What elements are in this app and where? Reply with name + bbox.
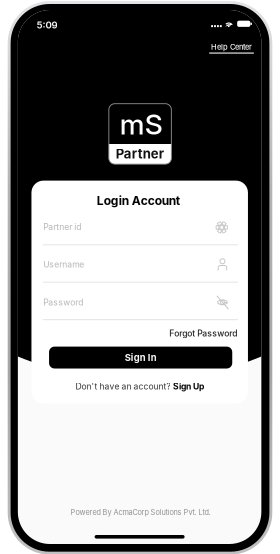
- staticText: Don't have an account?: [75, 381, 170, 391]
- staticText: Sign In: [125, 352, 157, 363]
- staticText: mS: [120, 107, 163, 141]
- button[interactable]: Partner id: [43, 220, 203, 233]
- button[interactable]: Forgot Password: [137, 327, 237, 340]
- staticText: Sign Up: [173, 381, 204, 391]
- staticText: Password: [43, 297, 83, 307]
- staticText: Help Center: [211, 42, 252, 51]
- staticText: Forgot Password: [169, 328, 237, 338]
- staticText: 5:09: [36, 19, 57, 31]
- staticText: Powered By AcmaCorp Solutions Pvt. Ltd.: [71, 508, 211, 517]
- button[interactable]: Sign In: [49, 347, 232, 368]
- staticText: Login Account: [97, 193, 180, 208]
- staticText: Partner: [116, 146, 164, 162]
- staticText: Username: [43, 259, 84, 269]
- button[interactable]: Help Center: [201, 38, 261, 60]
- staticText: Partner id: [43, 222, 81, 232]
- button[interactable]: Sign Up: [173, 381, 204, 391]
- button[interactable]: Username: [43, 258, 203, 271]
- button[interactable]: Password: [43, 296, 203, 309]
